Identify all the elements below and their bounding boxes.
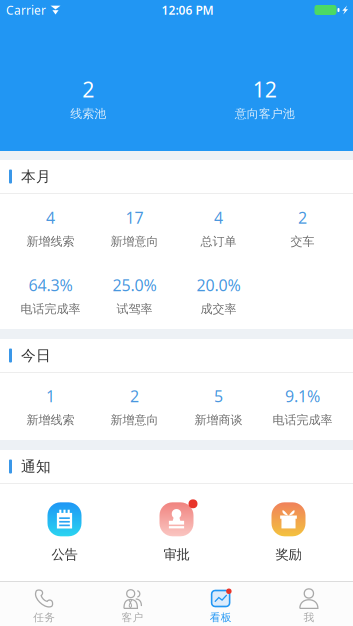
staticText: 电话完成率: [20, 302, 80, 316]
staticText: 新增线索: [26, 234, 74, 249]
button[interactable]: 2: [260, 207, 344, 249]
button[interactable]: 9.1%: [260, 385, 344, 427]
staticText: 意向客户池: [235, 106, 295, 121]
staticText: 12: [253, 75, 277, 103]
staticText: 9.1%: [285, 385, 320, 407]
staticText: 64.3%: [28, 274, 72, 296]
staticText: 审批: [163, 546, 189, 563]
button[interactable]: 2: [0, 75, 176, 121]
staticText: 2: [130, 385, 139, 407]
staticText: 17: [125, 207, 143, 228]
button[interactable]: 4: [176, 207, 260, 249]
button[interactable]: 奖励: [232, 502, 344, 563]
staticText: 成交率: [200, 302, 236, 316]
staticText: 1: [46, 385, 55, 407]
staticText: 今日: [21, 346, 51, 364]
staticText: 交车: [290, 234, 314, 249]
staticText: 线索池: [70, 106, 106, 121]
staticText: 20.0%: [196, 274, 240, 296]
staticText: 公告: [51, 546, 77, 563]
staticText: 看板: [210, 611, 232, 624]
button[interactable]: 看板: [176, 582, 265, 626]
staticText: Carrier: [6, 2, 46, 18]
button[interactable]: 12: [176, 75, 353, 121]
button[interactable]: 审批: [120, 502, 232, 563]
staticText: 本月: [21, 167, 51, 185]
staticText: 通知: [21, 457, 51, 475]
button[interactable]: 17: [92, 207, 176, 249]
staticText: 任务: [33, 611, 55, 624]
staticText: 4: [46, 207, 55, 228]
staticText: 新增线索: [26, 413, 74, 427]
staticText: 25.0%: [112, 274, 156, 296]
staticText: 新增商谈: [194, 413, 242, 427]
staticText: 客户: [121, 611, 143, 624]
staticText: 我: [303, 611, 314, 624]
button[interactable]: 客户: [88, 582, 176, 626]
staticText: 总订单: [200, 234, 236, 249]
button[interactable]: 5: [176, 385, 260, 427]
button[interactable]: 任务: [0, 582, 88, 626]
staticText: 2: [298, 207, 307, 228]
staticText: 电话完成率: [272, 413, 332, 427]
button[interactable]: 64.3%: [8, 274, 92, 316]
staticText: 奖励: [275, 546, 301, 563]
button[interactable]: 2: [92, 385, 176, 427]
staticText: 新增意向: [110, 413, 158, 427]
button[interactable]: 25.0%: [92, 274, 176, 316]
button[interactable]: 公告: [8, 502, 120, 563]
staticText: 4: [214, 207, 223, 228]
staticText: 新增意向: [110, 234, 158, 249]
button[interactable]: 20.0%: [176, 274, 260, 316]
staticText: 12:06 PM: [161, 2, 213, 18]
button[interactable]: 我: [265, 582, 353, 626]
staticText: 5: [214, 385, 223, 407]
staticText: 2: [82, 75, 94, 103]
staticText: 试驾率: [116, 302, 152, 316]
button[interactable]: 4: [8, 207, 92, 249]
button[interactable]: 1: [8, 385, 92, 427]
